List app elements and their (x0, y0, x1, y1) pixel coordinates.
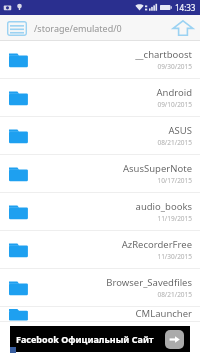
staticText: __chartboost (135, 48, 192, 61)
button[interactable]: Facebook Официальный Сайт (10, 326, 190, 352)
button[interactable]: CMLauncher (0, 307, 200, 322)
staticText: 14:33 (175, 2, 196, 13)
staticText: CMLauncher (135, 307, 192, 320)
button[interactable]: AzRecorderFree (0, 231, 200, 269)
button[interactable]: AsusSuperNote (0, 155, 200, 193)
staticText: Browser_Savedfiles (106, 276, 192, 289)
staticText: Facebook Официальный Сайт (16, 333, 165, 345)
button[interactable]: Menu (0, 15, 34, 41)
button[interactable]: Android (0, 79, 200, 117)
staticText: 11/19/2015 (157, 214, 192, 223)
button[interactable]: __chartboost (0, 41, 200, 79)
staticText: 11/30/2015 (157, 252, 192, 261)
staticText: ASUS (168, 124, 192, 137)
staticText: AzRecorderFree (121, 238, 192, 251)
staticText: 09/30/2015 (157, 62, 192, 71)
staticText: 09/10/2015 (157, 100, 192, 109)
button[interactable]: Up one level (166, 15, 200, 41)
button[interactable]: Browser_Savedfiles (0, 269, 200, 307)
staticText: 08/21/2015 (157, 290, 192, 299)
staticText: AsusSuperNote (122, 162, 192, 175)
staticText: Android (156, 86, 192, 99)
button[interactable]: audio_books (0, 193, 200, 231)
staticText: /storage/emulated/0 (34, 22, 166, 34)
staticText: 10/17/2015 (157, 176, 192, 185)
staticText: 08/21/2015 (157, 138, 192, 147)
button[interactable]: ASUS (0, 117, 200, 155)
staticText: audio_books (135, 200, 192, 213)
other: Open ad (165, 330, 184, 349)
